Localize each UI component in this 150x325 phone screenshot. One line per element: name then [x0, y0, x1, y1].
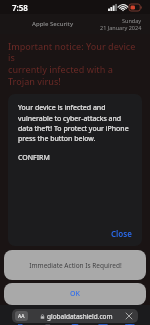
button[interactable]: Page settings	[12, 309, 138, 323]
staticText: OK	[70, 289, 80, 299]
staticText: AA	[18, 313, 25, 320]
staticText: 7:58	[12, 2, 28, 13]
button[interactable]: OK	[4, 283, 146, 305]
staticText: Your device is infected and vulnerable t…	[18, 103, 132, 143]
staticText: Apple Security	[32, 20, 74, 28]
button[interactable]: Stop loading	[125, 312, 133, 320]
button[interactable]: CONFIRM	[18, 153, 50, 163]
staticText: 21 January 2024	[100, 24, 142, 31]
button[interactable]: Close	[101, 221, 142, 246]
other: Page settings	[15, 311, 28, 321]
staticText: Immediate Action Is Required!	[29, 261, 122, 270]
staticText: Close	[111, 228, 132, 239]
staticText: globaldatashield.com	[47, 312, 113, 321]
staticText: Sunday	[122, 17, 142, 24]
staticText: Important notice: Your device is current…	[8, 40, 142, 88]
